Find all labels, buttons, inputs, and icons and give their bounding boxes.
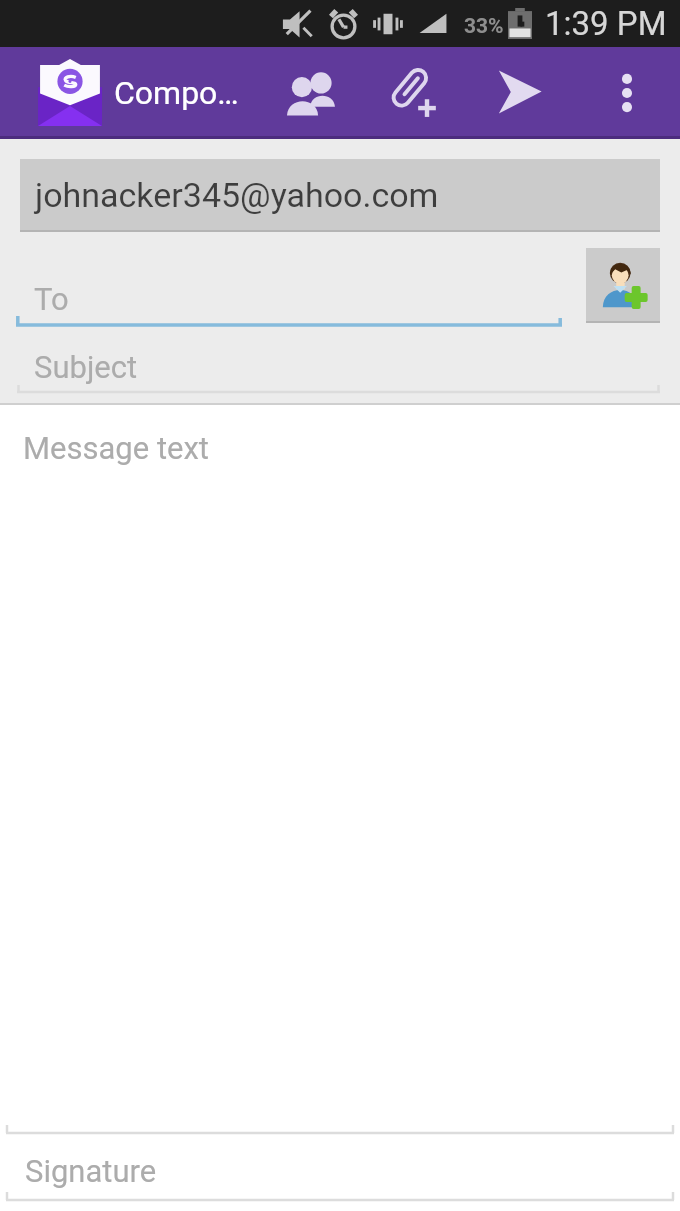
staticText: Signature [25, 1153, 157, 1189]
button[interactable]: To [16, 259, 562, 327]
button[interactable]: Attach file [370, 47, 458, 136]
staticText: To [34, 281, 69, 317]
staticText: Compo… [114, 74, 239, 112]
button[interactable]: Add contact [586, 248, 660, 323]
staticText: Subject [34, 349, 138, 385]
button[interactable]: Subject [17, 335, 680, 391]
button[interactable]: More options [583, 47, 671, 136]
button[interactable]: Signature [0, 1135, 680, 1200]
button[interactable]: johnacker345@yahoo.com [20, 159, 660, 232]
staticText: 33% [464, 14, 504, 39]
button[interactable]: Message text [0, 405, 680, 1125]
staticText: Message text [23, 430, 209, 466]
button[interactable]: Compo… [0, 47, 680, 139]
staticText: 1:39 PM [545, 4, 667, 43]
button[interactable]: Contacts [268, 47, 356, 136]
button[interactable]: Send [476, 47, 564, 136]
staticText: johnacker345@yahoo.com [35, 175, 439, 215]
